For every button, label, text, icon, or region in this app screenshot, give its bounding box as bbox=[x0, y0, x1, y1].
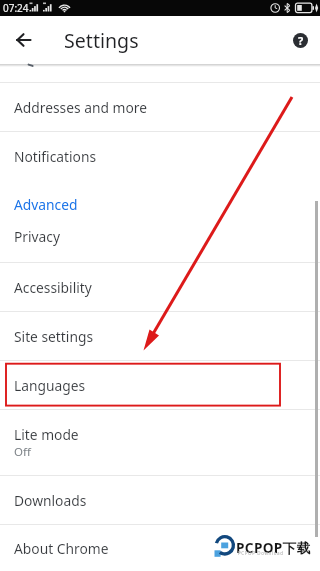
staticText: About Chrome bbox=[14, 539, 109, 558]
staticText: Off bbox=[14, 444, 31, 460]
button[interactable]: Addresses and more bbox=[0, 83, 320, 132]
staticText: Privacy bbox=[14, 227, 61, 246]
staticText: Notifications bbox=[14, 147, 97, 166]
staticText: Settings bbox=[64, 27, 139, 54]
staticText: 07:24 bbox=[3, 1, 29, 15]
button[interactable]: Notifications bbox=[0, 132, 320, 181]
staticText: Languages bbox=[14, 376, 86, 395]
staticText: PCPOP下载 bbox=[236, 538, 311, 557]
button[interactable]: Languages bbox=[0, 361, 320, 410]
button[interactable]: Accessibility bbox=[0, 263, 320, 312]
staticText: Advanced bbox=[14, 195, 78, 210]
staticText: Lite mode bbox=[14, 425, 79, 444]
button[interactable]: About Chrome bbox=[0, 525, 320, 571]
staticText: Downloads bbox=[14, 491, 87, 510]
staticText: Addresses and more bbox=[14, 98, 147, 117]
staticText: ? bbox=[298, 33, 304, 48]
button[interactable]: Downloads bbox=[0, 476, 320, 525]
staticText: Site settings bbox=[14, 327, 94, 346]
staticText: PCPOP Download bbox=[238, 550, 284, 556]
staticText: Accessibility bbox=[14, 278, 92, 297]
button[interactable]: Lite mode bbox=[0, 410, 320, 476]
button[interactable]: Help and feedback bbox=[280, 16, 320, 64]
button[interactable]: Site settings bbox=[0, 312, 320, 361]
button[interactable]: Back bbox=[0, 16, 46, 64]
button[interactable]: Privacy bbox=[0, 210, 320, 263]
